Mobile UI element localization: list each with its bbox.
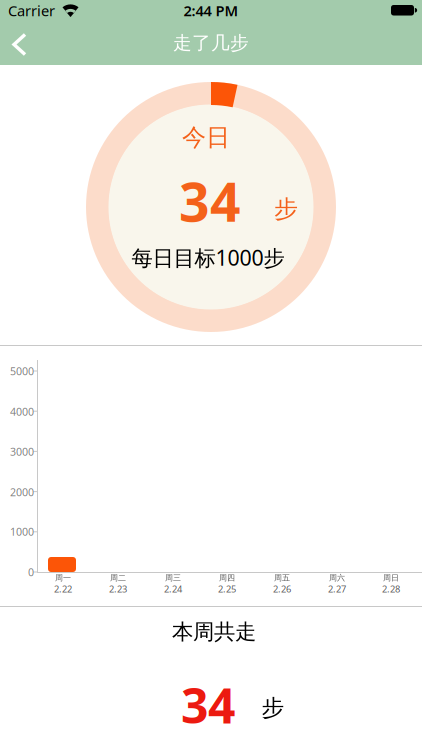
staticText: 周日 [383, 573, 399, 583]
staticText: 每日目标1000步 [131, 243, 284, 272]
staticText: Carrier [8, 1, 55, 20]
staticText: 2.27 [328, 583, 346, 595]
staticText: 2.22 [54, 583, 72, 595]
staticText: 5000 [10, 364, 34, 378]
staticText: 34 [179, 166, 241, 236]
staticText: 3000 [10, 444, 34, 459]
staticText: 步 [261, 694, 284, 722]
button[interactable]: Back [0, 21, 43, 65]
staticText: 走了几步 [173, 31, 249, 54]
staticText: 2.23 [109, 583, 127, 595]
staticText: 周五 [274, 573, 290, 583]
staticText: 本周共走 [172, 619, 256, 645]
staticText: 周二 [110, 573, 126, 583]
staticText: 步 [274, 194, 298, 224]
staticText: 2.28 [382, 583, 400, 595]
staticText: 34 [181, 673, 235, 737]
staticText: 2.26 [273, 583, 291, 595]
staticText: 今日 [182, 123, 230, 152]
staticText: 周六 [329, 573, 345, 583]
staticText: 2:44 PM [183, 1, 238, 20]
staticText: 2000 [10, 485, 34, 499]
staticText: 周四 [219, 573, 235, 583]
staticText: 2.24 [164, 583, 182, 595]
staticText: 1000 [10, 524, 34, 539]
staticText: 2.25 [218, 583, 236, 595]
staticText: 周三 [165, 573, 181, 583]
staticText: 0 [28, 565, 34, 579]
staticText: 周一 [55, 573, 71, 583]
staticText: 4000 [10, 404, 34, 419]
